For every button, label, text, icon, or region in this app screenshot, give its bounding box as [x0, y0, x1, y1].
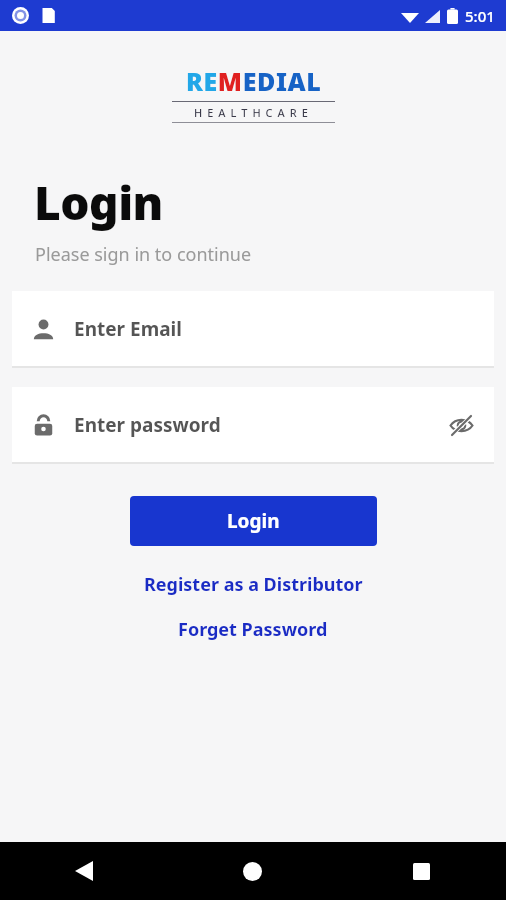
button[interactable]: Login: [130, 496, 377, 546]
staticText: Forget Password: [178, 617, 328, 642]
button[interactable]: Register as a Distributor: [132, 568, 375, 601]
staticText: 5:01: [465, 6, 495, 26]
staticText: HEALTHCARE: [194, 105, 313, 120]
staticText: Login: [34, 171, 163, 234]
staticText: Please sign in to continue: [35, 242, 252, 267]
staticText: Enter Email: [74, 316, 182, 342]
button[interactable]: Enter Email: [12, 291, 494, 368]
staticText: Enter password: [74, 412, 221, 438]
button[interactable]: Recent apps: [337, 842, 506, 900]
button[interactable]: Enter password: [12, 387, 494, 464]
staticText: Login: [227, 508, 280, 534]
button[interactable]: Forget Password: [166, 613, 340, 646]
button[interactable]: Show password: [446, 410, 476, 440]
button[interactable]: Back: [0, 842, 168, 900]
button[interactable]: Home: [168, 842, 337, 900]
staticText: REMEDIAL: [186, 64, 322, 98]
staticText: Register as a Distributor: [144, 572, 363, 597]
